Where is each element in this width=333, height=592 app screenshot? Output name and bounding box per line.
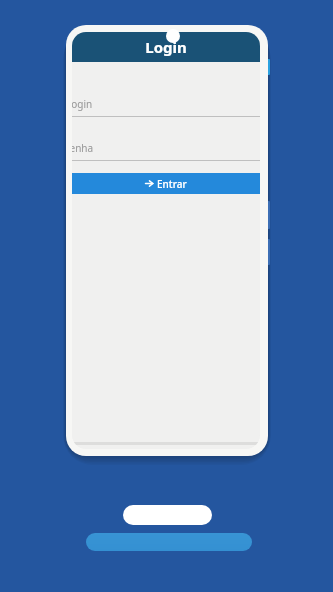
staticText: Login [72,97,93,111]
button[interactable]: Senha [72,136,260,160]
staticText: Entrar [157,177,187,191]
staticText: Login [145,37,187,57]
button[interactable]: Home indicator [123,505,212,525]
button[interactable]: Entrar [72,173,260,194]
button[interactable]: Navigation bar [86,533,252,551]
button[interactable]: Login [72,92,260,116]
staticText: Senha [72,141,94,155]
